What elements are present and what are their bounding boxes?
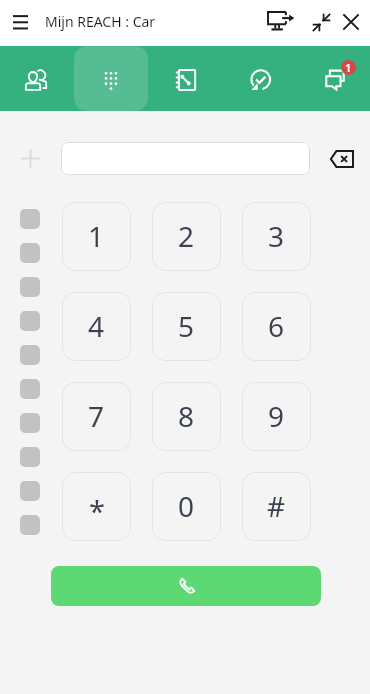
button[interactable]: Backspace (325, 142, 358, 175)
button[interactable]: 2 (152, 202, 221, 271)
button[interactable]: Line 1 (20, 209, 40, 229)
button[interactable]: Line 6 (20, 379, 40, 399)
button[interactable]: Line 7 (20, 413, 40, 433)
button[interactable]: Add (14, 142, 46, 174)
staticText: 9 (268, 397, 285, 435)
button[interactable]: Line 5 (20, 345, 40, 365)
button[interactable]: 7 (62, 382, 131, 451)
button[interactable]: # (242, 472, 311, 541)
staticText: 7 (88, 397, 105, 435)
button[interactable]: Dialpad (74, 46, 148, 111)
button[interactable]: Line 9 (20, 481, 40, 501)
button[interactable]: Line 8 (20, 447, 40, 467)
button[interactable]: 1 (62, 202, 131, 271)
staticText: 0 (178, 487, 195, 525)
button[interactable]: 4 (62, 292, 131, 361)
button[interactable]: History (222, 46, 296, 111)
button[interactable]: Minimize (307, 8, 335, 36)
button[interactable]: 6 (242, 292, 311, 361)
button[interactable]: Line 3 (20, 277, 40, 297)
button[interactable]: Line 10 (20, 515, 40, 535)
staticText: 2 (178, 217, 195, 255)
button[interactable]: Phone number (61, 142, 310, 175)
staticText: * (89, 491, 105, 530)
button[interactable]: Menu (6, 7, 34, 35)
staticText: 1 (88, 217, 105, 255)
staticText: Mijn REACH : Car (45, 12, 156, 31)
button[interactable]: Call (51, 566, 321, 606)
button[interactable]: 8 (152, 382, 221, 451)
button[interactable]: Messages (296, 46, 370, 111)
button[interactable]: Line 2 (20, 243, 40, 263)
staticText: 8 (178, 397, 195, 435)
staticText: 4 (88, 307, 105, 345)
button[interactable]: 3 (242, 202, 311, 271)
staticText: 5 (178, 307, 195, 345)
button[interactable]: Close (337, 8, 365, 36)
staticText: 6 (268, 307, 285, 345)
button[interactable]: 9 (242, 382, 311, 451)
button[interactable]: Line 4 (20, 311, 40, 331)
button[interactable]: Contacts (0, 46, 74, 111)
staticText: 3 (268, 217, 285, 255)
button[interactable]: 0 (152, 472, 221, 541)
button[interactable]: Pop out (265, 5, 296, 36)
button[interactable]: Phone book (148, 46, 222, 111)
staticText: 1 (345, 60, 352, 75)
staticText: # (267, 487, 286, 525)
button[interactable]: * (62, 472, 131, 541)
button[interactable]: 5 (152, 292, 221, 361)
